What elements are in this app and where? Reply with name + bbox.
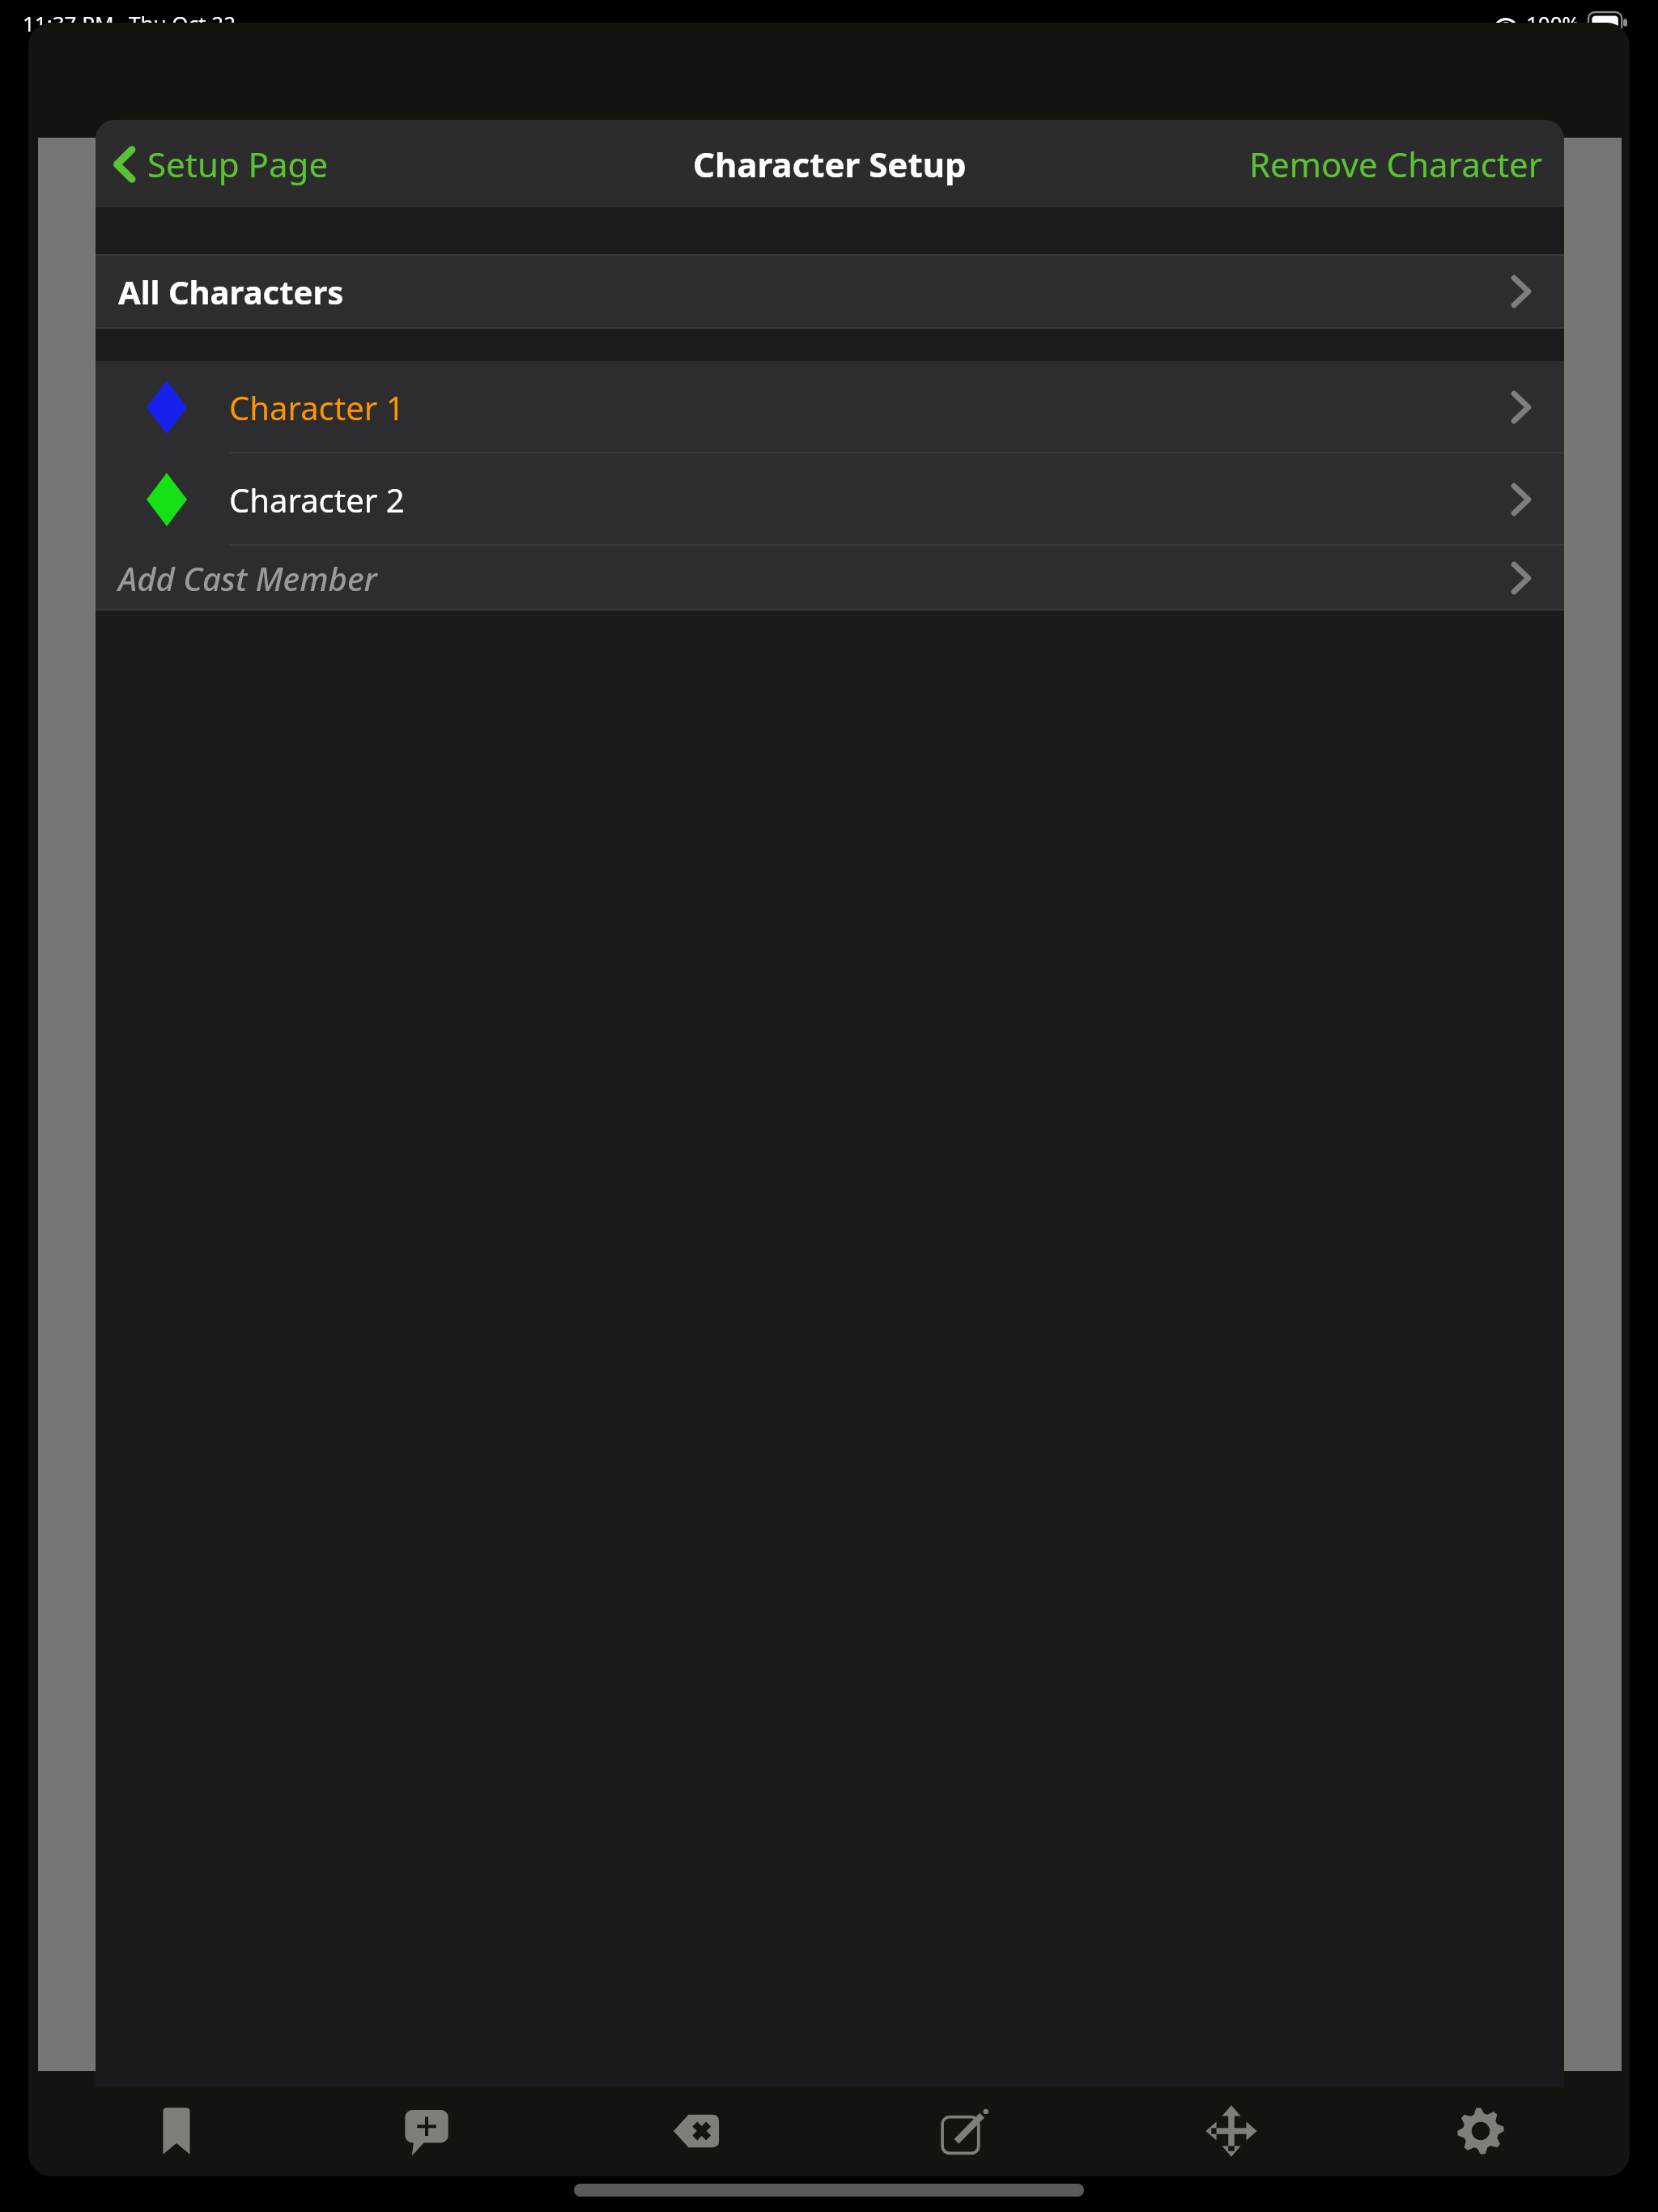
button[interactable]: Settings xyxy=(1432,2082,1529,2180)
button[interactable]: Character 1 xyxy=(96,361,1564,453)
button[interactable]: All Characters xyxy=(96,254,1564,329)
button[interactable]: Add comment xyxy=(378,2082,475,2180)
button[interactable]: Setup Page xyxy=(96,128,345,200)
staticText: Add Cast Member xyxy=(118,556,377,600)
staticText: Setup Page xyxy=(147,141,329,187)
staticText: Character 2 xyxy=(229,478,405,521)
button[interactable]: Character 2 xyxy=(96,453,1564,546)
button[interactable]: Add Cast Member xyxy=(96,546,1564,610)
button[interactable]: Move xyxy=(1183,2082,1280,2180)
staticText: 11:37 PM xyxy=(23,9,114,37)
staticText: Character Setup xyxy=(693,141,967,187)
button[interactable]: Bookmark xyxy=(128,2082,225,2180)
staticText: Thu Oct 22 xyxy=(129,9,236,37)
staticText: 100% xyxy=(1526,9,1580,37)
button[interactable]: Delete xyxy=(648,2082,745,2180)
staticText: Remove Character xyxy=(1249,141,1543,187)
button[interactable]: Remove Character xyxy=(1228,126,1564,202)
staticText: All Characters xyxy=(118,270,344,313)
staticText: Character 1 xyxy=(229,385,405,429)
button[interactable]: Compose xyxy=(915,2082,1012,2180)
